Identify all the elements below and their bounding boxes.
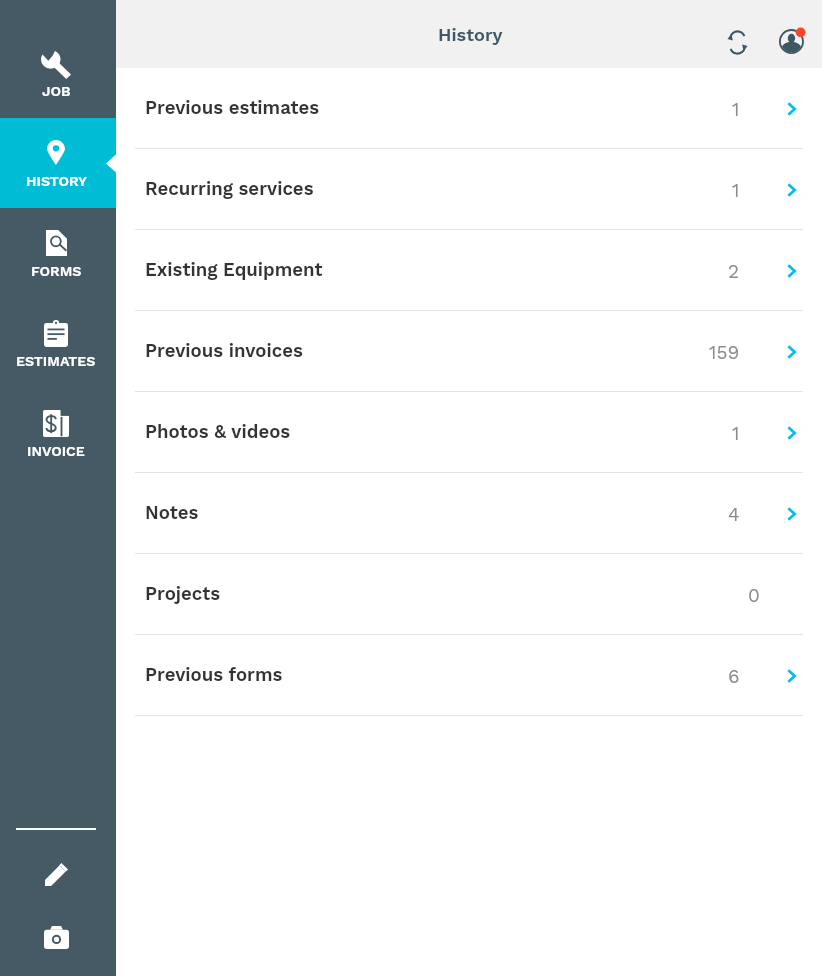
button[interactable]: Previous estimates (116, 68, 822, 149)
staticText: Previous invoices (145, 340, 303, 362)
staticText: Previous estimates (145, 97, 320, 119)
staticText: 1 (732, 422, 740, 444)
staticText: 1 (732, 98, 740, 120)
staticText: HISTORY (26, 173, 87, 190)
button[interactable]: Account (767, 11, 821, 65)
button[interactable]: Previous forms (116, 635, 822, 716)
staticText: ESTIMATES (16, 353, 96, 370)
button[interactable]: HISTORY (0, 118, 116, 208)
staticText: 1 (732, 179, 740, 201)
staticText: History (438, 24, 503, 45)
staticText: 4 (728, 503, 740, 525)
button[interactable]: FORMS (0, 208, 116, 298)
button[interactable]: JOB (0, 28, 116, 118)
button[interactable]: Recurring services (116, 149, 822, 230)
button[interactable]: Sync (710, 15, 764, 69)
staticText: Projects (145, 583, 221, 605)
staticText: 6 (728, 665, 740, 687)
staticText: 159 (709, 341, 740, 363)
button[interactable]: Previous invoices (116, 311, 822, 392)
staticText: 0 (748, 584, 760, 606)
staticText: Recurring services (145, 178, 314, 200)
staticText: Existing Equipment (145, 259, 323, 281)
staticText: Notes (145, 502, 199, 524)
staticText: INVOICE (27, 443, 85, 460)
button[interactable]: Notes (116, 473, 822, 554)
staticText: 2 (728, 260, 740, 282)
button[interactable]: Existing Equipment (116, 230, 822, 311)
button[interactable]: Camera (0, 916, 116, 958)
button[interactable]: ESTIMATES (0, 298, 116, 388)
button[interactable]: Photos & videos (116, 392, 822, 473)
staticText: JOB (42, 83, 71, 100)
button[interactable]: INVOICE (0, 388, 116, 478)
button[interactable]: Projects (116, 554, 822, 635)
button[interactable]: Edit (0, 852, 116, 897)
staticText: Previous forms (145, 664, 283, 686)
staticText: FORMS (31, 263, 82, 280)
staticText: Photos & videos (145, 421, 291, 443)
